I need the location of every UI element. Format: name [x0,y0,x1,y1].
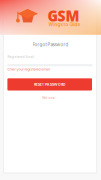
button[interactable]: RESET PASSWORD [7,78,92,90]
staticText: RESET PASSWORD [34,82,66,87]
staticText: Not now [42,96,54,100]
staticText: Wings to Glide [48,22,80,27]
staticText: Enter your registered email [7,67,50,71]
staticText: Registered Email [7,55,34,59]
button[interactable]: Not now [0,96,99,100]
staticText: Forgot Password [32,42,68,47]
staticText: GSM [48,4,80,26]
